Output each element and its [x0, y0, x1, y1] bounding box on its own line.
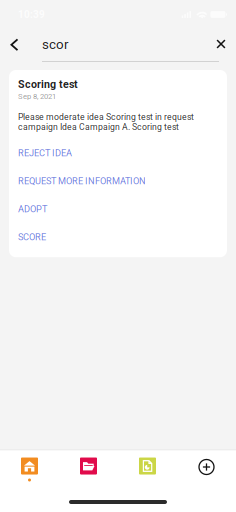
button[interactable]: Reports	[118, 451, 177, 488]
staticText: ADOPT	[18, 204, 47, 215]
staticText: Scoring test	[18, 78, 78, 90]
button[interactable]: Create	[177, 451, 236, 488]
button[interactable]: Back	[6, 26, 23, 62]
staticText: Please moderate idea Scoring test in req…	[18, 112, 194, 132]
staticText: REQUEST MORE INFORMATION	[18, 176, 146, 187]
button[interactable]: Campaigns	[59, 451, 118, 488]
button[interactable]: REJECT IDEA	[9, 139, 227, 167]
staticText: REJECT IDEA	[18, 148, 72, 159]
button[interactable]: Clear search	[211, 26, 231, 62]
button[interactable]: SCORE	[9, 223, 227, 251]
staticText: SCORE	[18, 232, 46, 243]
button[interactable]: Home	[0, 451, 59, 488]
button[interactable]: ADOPT	[9, 195, 227, 223]
button[interactable]: REQUEST MORE INFORMATION	[9, 167, 227, 195]
staticText: Sep 8, 2021	[18, 92, 56, 101]
staticText: scor	[42, 37, 69, 52]
